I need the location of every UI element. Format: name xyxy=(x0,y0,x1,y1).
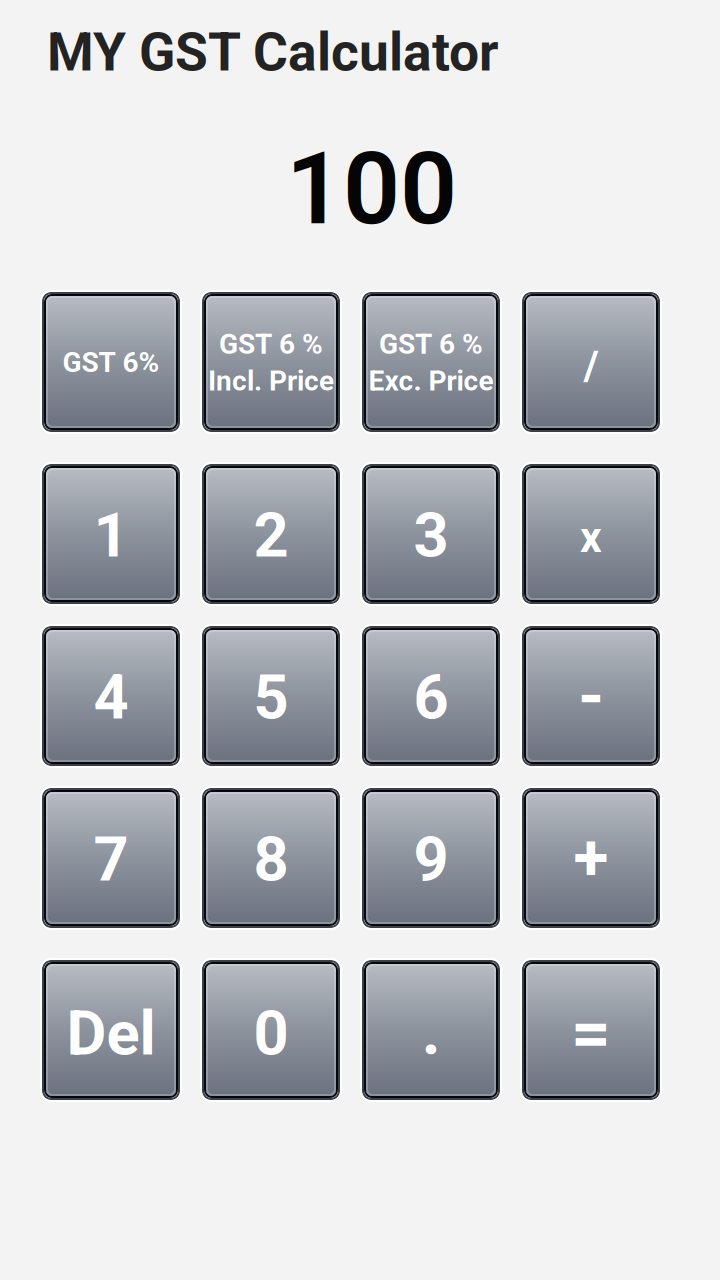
button[interactable]: Decimal point xyxy=(362,960,500,1100)
button[interactable]: GST 6 % Incl. Price xyxy=(202,292,340,432)
staticText: 9 xyxy=(413,824,448,895)
staticText: 1 xyxy=(93,500,128,571)
button[interactable]: 2 xyxy=(202,464,340,604)
button[interactable]: 4 xyxy=(42,626,180,766)
staticText: 4 xyxy=(93,662,128,733)
staticText: 5 xyxy=(253,662,288,733)
button[interactable]: GST 6% xyxy=(42,292,180,432)
staticText: x xyxy=(580,512,602,562)
button[interactable]: Equals xyxy=(522,960,660,1100)
staticText: 2 xyxy=(253,500,288,571)
staticText: = xyxy=(571,992,611,1074)
button[interactable]: 1 xyxy=(42,464,180,604)
staticText: + xyxy=(573,820,608,895)
staticText: 7 xyxy=(93,824,128,895)
staticText: - xyxy=(578,657,604,735)
staticText: GST 6 % xyxy=(219,328,323,360)
button[interactable]: Plus xyxy=(522,788,660,928)
staticText: 100 xyxy=(286,130,457,248)
staticText: GST 6 % xyxy=(379,328,483,360)
button[interactable]: 7 xyxy=(42,788,180,928)
staticText: Exc. Price xyxy=(368,364,493,397)
button[interactable]: 0 xyxy=(202,960,340,1100)
button[interactable]: Minus xyxy=(522,626,660,766)
button[interactable]: Multiply xyxy=(522,464,660,604)
staticText: 8 xyxy=(253,824,288,895)
button[interactable]: Divide xyxy=(522,292,660,432)
button[interactable]: 9 xyxy=(362,788,500,928)
button[interactable]: 6 xyxy=(362,626,500,766)
staticText: MY GST Calculator xyxy=(47,21,499,83)
button[interactable]: Del xyxy=(42,960,180,1100)
button[interactable]: 5 xyxy=(202,626,340,766)
staticText: GST 6% xyxy=(62,346,159,379)
staticText: 3 xyxy=(413,500,448,571)
button[interactable]: 3 xyxy=(362,464,500,604)
button[interactable]: GST 6 % Exc. Price xyxy=(362,292,500,432)
staticText: / xyxy=(583,341,598,390)
staticText: 0 xyxy=(253,998,288,1069)
staticText: Del xyxy=(66,998,155,1069)
staticText: 6 xyxy=(413,662,448,733)
button[interactable]: 8 xyxy=(202,788,340,928)
staticText: Incl. Price xyxy=(208,364,334,397)
staticText: . xyxy=(421,992,440,1070)
